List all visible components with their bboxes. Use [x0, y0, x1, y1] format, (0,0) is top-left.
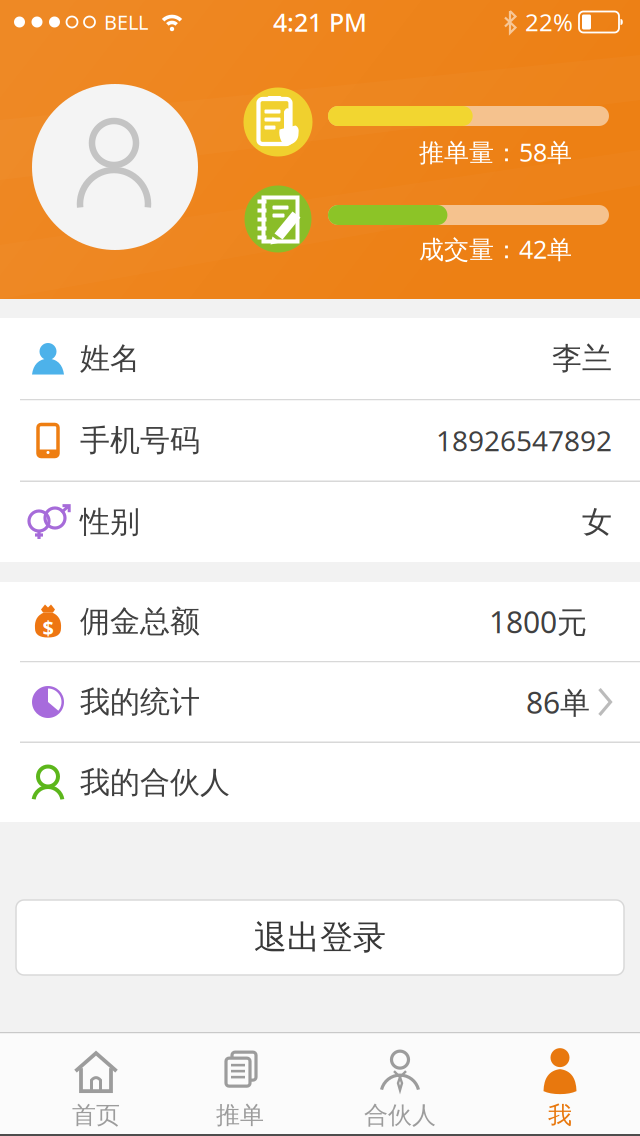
- staticText: 成交量：42单: [419, 232, 572, 266]
- button[interactable]: 成交量: [244, 185, 311, 252]
- staticText: 推单: [216, 1100, 264, 1130]
- staticText: 18926547892: [436, 421, 612, 459]
- button[interactable]: 首页: [0, 1034, 160, 1134]
- button[interactable]: 我的合伙人: [0, 743, 640, 822]
- staticText: 4:21 PM: [273, 5, 367, 39]
- staticText: 手机号码: [80, 422, 200, 459]
- button[interactable]: 手机号码: [0, 400, 640, 480]
- staticText: 李兰: [552, 340, 612, 377]
- button[interactable]: 我: [480, 1034, 640, 1134]
- staticText: 推单量：58单: [419, 135, 572, 169]
- staticText: 1800元: [489, 601, 587, 642]
- staticText: 女: [582, 503, 612, 541]
- staticText: $: [42, 614, 53, 641]
- button[interactable]: 姓名: [0, 318, 640, 399]
- staticText: 佣金总额: [80, 603, 200, 640]
- staticText: 性别: [80, 503, 140, 541]
- button[interactable]: 推单: [160, 1034, 320, 1134]
- staticText: 合伙人: [364, 1100, 436, 1130]
- staticText: 我的合伙人: [80, 764, 230, 801]
- staticText: 我的统计: [80, 683, 200, 721]
- staticText: 姓名: [80, 340, 140, 377]
- button[interactable]: 合伙人: [320, 1034, 480, 1134]
- button[interactable]: 我的统计: [0, 662, 640, 741]
- button[interactable]: 推单量: [243, 87, 312, 156]
- staticText: BELL: [104, 8, 148, 36]
- staticText: 首页: [72, 1100, 120, 1130]
- button[interactable]: $: [0, 582, 640, 661]
- staticText: 22%: [525, 6, 573, 38]
- staticText: 退出登录: [254, 917, 386, 958]
- staticText: 86单: [526, 682, 590, 722]
- staticText: 我: [548, 1100, 572, 1130]
- button[interactable]: 性别: [0, 482, 640, 562]
- button[interactable]: 退出登录: [16, 900, 624, 975]
